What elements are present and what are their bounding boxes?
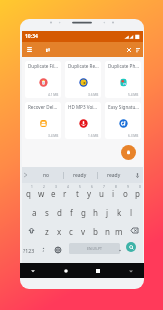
staticText: x [57, 226, 62, 237]
button[interactable]: 3 [47, 183, 59, 202]
button[interactable]: 2 [35, 183, 47, 202]
button[interactable]: 9 [119, 183, 131, 202]
staticText: 4.1 MB [48, 93, 59, 97]
button[interactable]: s [41, 202, 53, 221]
staticText: HD MP3 Voice... [68, 104, 99, 110]
button[interactable]: Back [28, 266, 38, 276]
staticText: 0 [139, 185, 141, 189]
button[interactable]: HD MP3 Voice... [65, 102, 101, 139]
button[interactable]: no [29, 167, 63, 183]
staticText: 6.3 MB [128, 134, 139, 138]
button[interactable]: z [40, 221, 53, 240]
button[interactable]: Recents [93, 266, 103, 276]
staticText: a [32, 207, 37, 218]
button[interactable]: 8 [107, 183, 119, 202]
staticText: k [117, 207, 122, 218]
button[interactable]: j [101, 202, 113, 221]
staticText: Recover Delet... [28, 104, 59, 110]
button[interactable]: Emoji [36, 240, 50, 259]
staticText: d [57, 207, 62, 218]
button[interactable]: 6 [83, 183, 95, 202]
staticText: 8 [115, 185, 117, 189]
staticText: p [135, 188, 140, 199]
staticText: 3.6 MB [88, 93, 99, 97]
staticText: Duplicate File... [28, 63, 59, 69]
staticText: 9 [127, 185, 129, 189]
button[interactable]: Voice input [131, 167, 143, 183]
button[interactable]: Duplicate Pho... [105, 61, 141, 98]
staticText: no [43, 172, 50, 179]
button[interactable]: m [113, 221, 125, 240]
button[interactable]: Close [123, 44, 134, 55]
button[interactable]: Change language [50, 240, 66, 259]
button[interactable]: ?123 [22, 240, 36, 259]
button[interactable]: k [113, 202, 125, 221]
staticText: z [45, 226, 49, 237]
staticText: w [38, 188, 45, 199]
staticText: Duplicate Pho... [108, 63, 139, 69]
button[interactable]: x [53, 221, 65, 240]
button[interactable]: Sort [132, 44, 143, 55]
button[interactable]: Duplicate Re... [65, 61, 101, 98]
button[interactable]: Home [61, 266, 71, 276]
button[interactable]: n [101, 221, 113, 240]
staticText: ?123 [23, 247, 35, 254]
button[interactable]: 4 [59, 183, 71, 202]
staticText: i [112, 188, 115, 199]
staticText: 2 [43, 185, 45, 189]
button[interactable]: ready [97, 167, 131, 183]
staticText: r [63, 188, 67, 199]
staticText: 10:34 [25, 33, 38, 40]
staticText: l [130, 207, 133, 218]
button[interactable]: 5 [71, 183, 83, 202]
staticText: 3 [55, 185, 57, 189]
staticText: q [26, 188, 31, 199]
staticText: s [45, 207, 49, 218]
staticText: m [115, 226, 123, 237]
button[interactable]: Backspace [125, 221, 143, 240]
button[interactable]: Space [69, 243, 120, 254]
button[interactable]: Menu [24, 44, 35, 55]
staticText: e [51, 188, 56, 199]
button[interactable]: d [53, 202, 65, 221]
staticText: c [69, 226, 73, 237]
staticText: y [87, 188, 92, 199]
button[interactable]: Recover Delet... [25, 102, 61, 139]
button[interactable]: h [89, 202, 101, 221]
button[interactable]: f [65, 202, 77, 221]
button[interactable]: ready [63, 167, 97, 183]
staticText: v [81, 226, 86, 237]
staticText: EN-US-PT [87, 246, 102, 251]
staticText: ready [73, 172, 87, 179]
button[interactable]: g [77, 202, 89, 221]
staticText: h [93, 207, 98, 218]
staticText: b [93, 226, 98, 237]
staticText: o [123, 188, 128, 199]
button[interactable]: l [125, 202, 137, 221]
button[interactable]: Shift [22, 221, 40, 240]
staticText: j [106, 207, 109, 218]
button[interactable]: 0 [131, 183, 143, 202]
button[interactable]: Easy Signature [105, 102, 141, 139]
button[interactable]: Hide keyboard [126, 266, 136, 276]
button[interactable]: Period [114, 240, 125, 259]
button[interactable]: v [77, 221, 89, 240]
button[interactable]: c [65, 221, 77, 240]
button[interactable]: 7 [95, 183, 107, 202]
staticText: Duplicate Re... [68, 63, 99, 69]
button[interactable]: Duplicate File... [25, 61, 61, 98]
button[interactable]: b [89, 221, 101, 240]
staticText: 5.4 MB [128, 93, 139, 97]
staticText: ready [107, 172, 121, 179]
button[interactable]: Search [126, 242, 136, 252]
button[interactable]: a [28, 202, 41, 221]
button[interactable]: 1 [22, 183, 35, 202]
staticText: u [99, 188, 104, 199]
staticText: 5 [79, 185, 81, 189]
staticText: Easy Signature [108, 104, 139, 110]
staticText: 7 [103, 185, 105, 189]
staticText: 1.6 MB [88, 134, 99, 138]
staticText: 6 [91, 185, 93, 189]
button[interactable]: Delete [121, 145, 136, 160]
staticText: 1 [31, 185, 33, 189]
